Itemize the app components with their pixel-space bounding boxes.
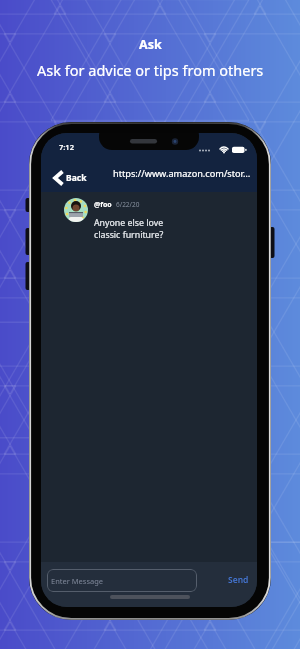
staticText: Ask for advice or tips from others: [37, 60, 264, 80]
staticText: Back: [66, 172, 87, 184]
button[interactable]: Back: [51, 166, 93, 190]
staticText: Enter Message: [51, 576, 104, 586]
staticText: @foo: [94, 200, 112, 210]
staticText: Send: [228, 574, 249, 586]
staticText: 6/22/20: [116, 200, 140, 209]
button[interactable]: Send: [221, 571, 255, 589]
staticText: 7:12: [59, 142, 74, 152]
staticText: https://www.amazon.com/stor…: [113, 167, 251, 180]
button[interactable]: Enter Message: [47, 569, 197, 592]
button[interactable]: [64, 198, 88, 222]
button[interactable]: https://www.amazon.com/stor…: [106, 164, 257, 182]
staticText: Anyone else love classic furniture?: [94, 217, 164, 241]
staticText: Ask: [139, 36, 162, 53]
